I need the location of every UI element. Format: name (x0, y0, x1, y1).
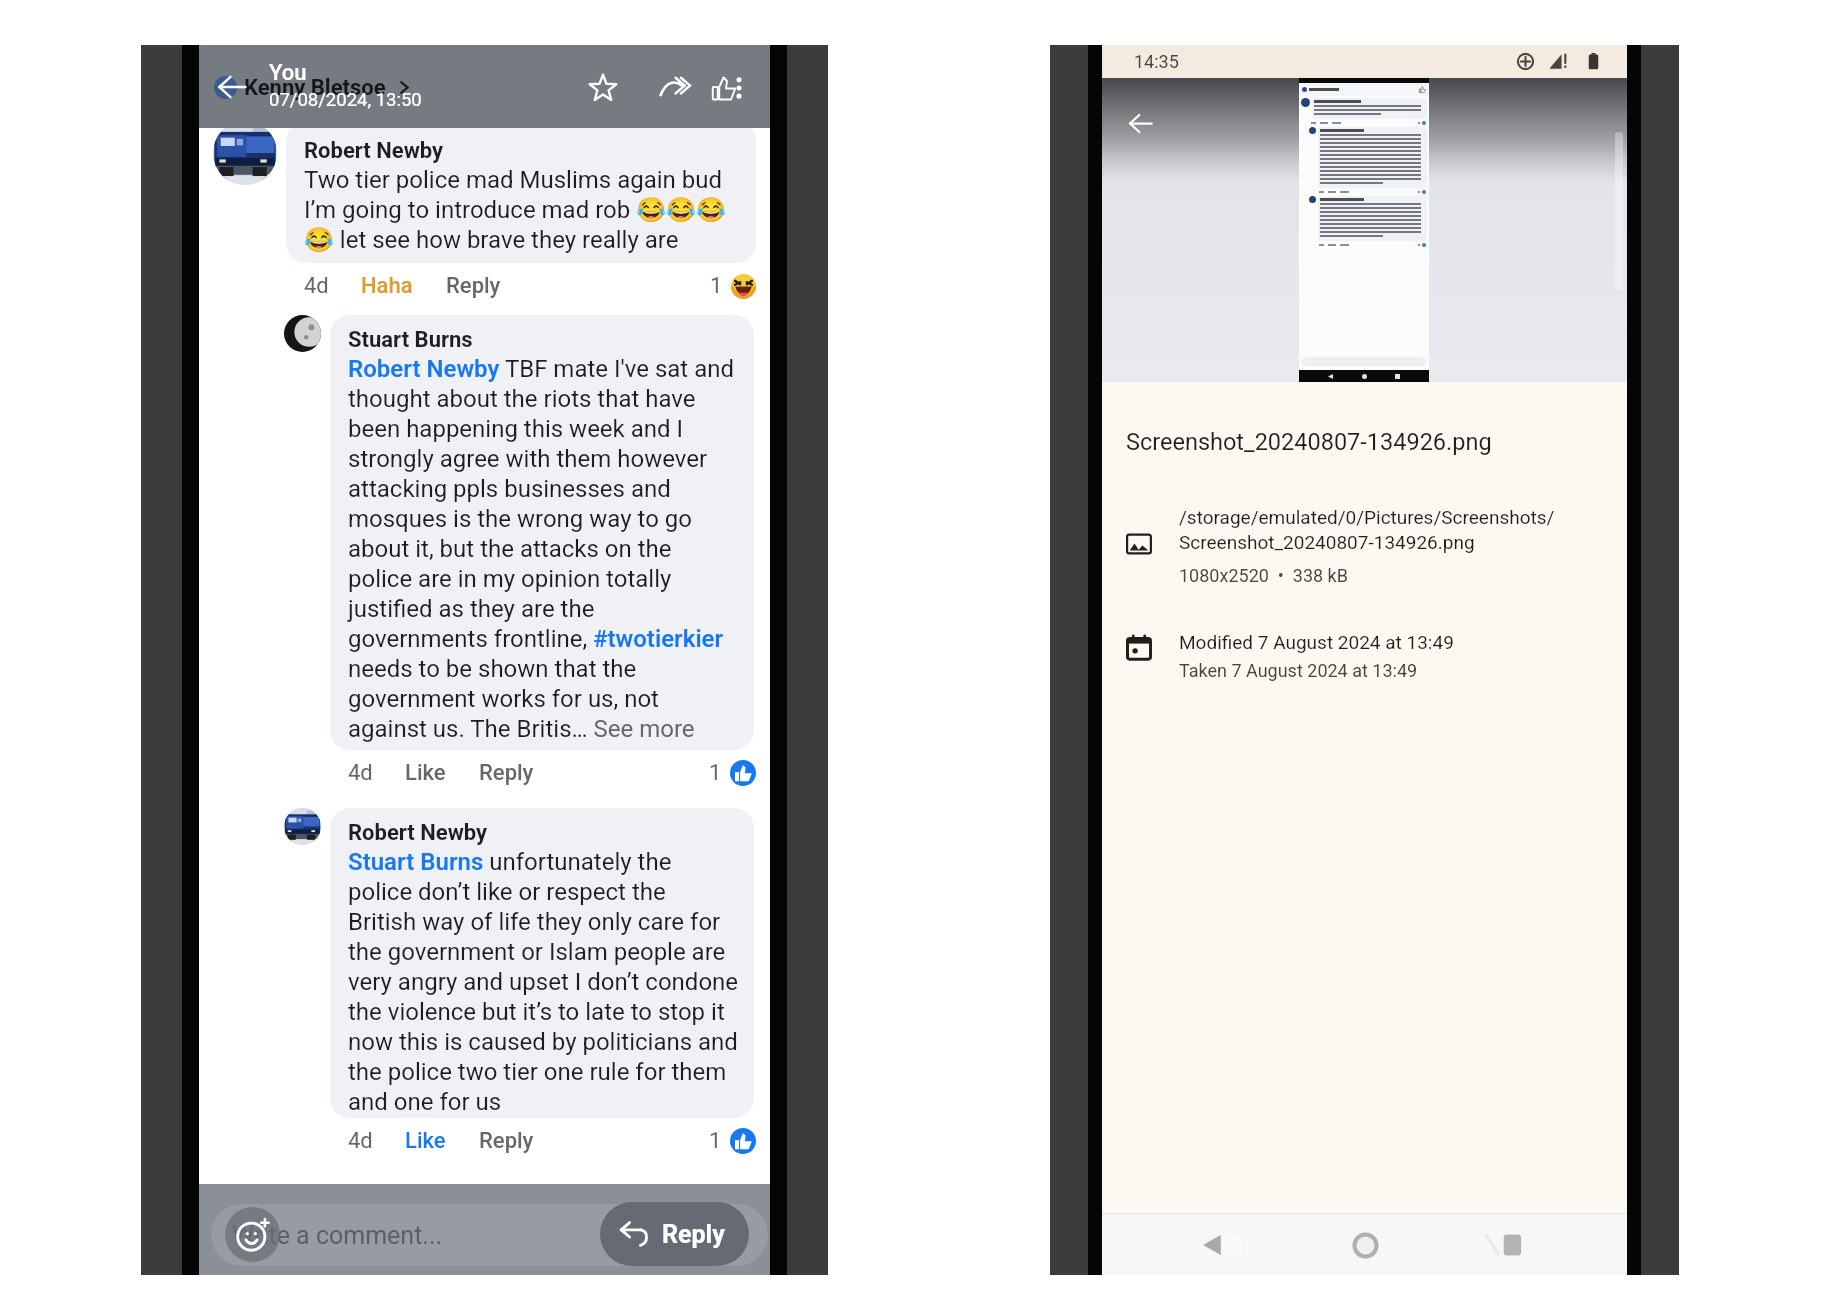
button[interactable]: Robert Newby (286, 121, 756, 263)
staticText: 1 (709, 1128, 722, 1154)
staticText: Like (405, 1128, 446, 1154)
staticText: Like (405, 760, 446, 786)
button[interactable]: Back (1113, 96, 1167, 150)
button[interactable]: Add emoji (225, 1207, 280, 1262)
staticText: Kenny Bletsoe (244, 75, 386, 101)
button[interactable]: Robert Newby (330, 808, 754, 1118)
button[interactable]: Stuart Burns (330, 315, 754, 750)
staticText: /storage/emulated/0/Pictures/Screenshots… (1179, 504, 1555, 554)
staticText: 07/08/2024, 13:50 (269, 89, 422, 111)
staticText: Reply (479, 1128, 534, 1154)
button[interactable]: Reply (446, 273, 501, 299)
staticText: Taken 7 August 2024 at 13:49 (1179, 660, 1418, 681)
button[interactable]: Like (405, 1128, 446, 1154)
staticText: 1080x2520 • 338 kB (1179, 565, 1348, 586)
staticText: Robert Newby (348, 816, 488, 846)
staticText: Stuart Burns unfortunately the police do… (348, 846, 739, 1116)
staticText: Robert Newby TBF mate I've sat and thoug… (348, 353, 734, 743)
button[interactable]: Back (210, 65, 254, 109)
button[interactable]: Back (1196, 1214, 1260, 1275)
button[interactable]: Write a comment... (211, 1204, 768, 1266)
button[interactable]: More options (728, 77, 750, 99)
button[interactable]: /storage/emulated/0/Pictures/Screenshots… (1102, 504, 1627, 586)
button[interactable]: Modified 7 August 2024 at 13:49 (1102, 631, 1627, 681)
staticText: 1 (710, 273, 723, 299)
staticText: You (269, 60, 307, 86)
button[interactable]: Like (706, 70, 742, 106)
button[interactable]: Favourite (581, 66, 625, 110)
staticText: 4d (304, 273, 329, 299)
staticText: 4d (348, 1128, 373, 1154)
staticText: Stuart Burns (348, 323, 473, 353)
staticText: Reply (446, 273, 501, 299)
button[interactable]: Recents (1481, 1214, 1545, 1275)
staticText: Screenshot_20240807-134926.png (1126, 428, 1492, 456)
staticText: Modified 7 August 2024 at 13:49 (1179, 631, 1454, 653)
staticText: Robert Newby (304, 134, 444, 164)
staticText: Reply (479, 760, 534, 786)
button[interactable]: Reply (600, 1202, 749, 1266)
button[interactable]: Home (1339, 1219, 1391, 1271)
staticText: Write a comment... (232, 1221, 443, 1250)
staticText: Two tier police mad Muslims again bud I’… (304, 164, 726, 254)
staticText: Haha (361, 273, 413, 299)
staticText: 4d (348, 760, 373, 786)
staticText: 1 (709, 760, 722, 786)
button[interactable]: Share (653, 66, 697, 110)
button[interactable]: Reply (479, 760, 534, 786)
button[interactable]: Haha (361, 273, 413, 299)
button[interactable]: Like (405, 760, 446, 786)
staticText: Reply (662, 1220, 725, 1249)
staticText: 14:35 (1134, 51, 1179, 72)
button[interactable]: Reply (479, 1128, 534, 1154)
